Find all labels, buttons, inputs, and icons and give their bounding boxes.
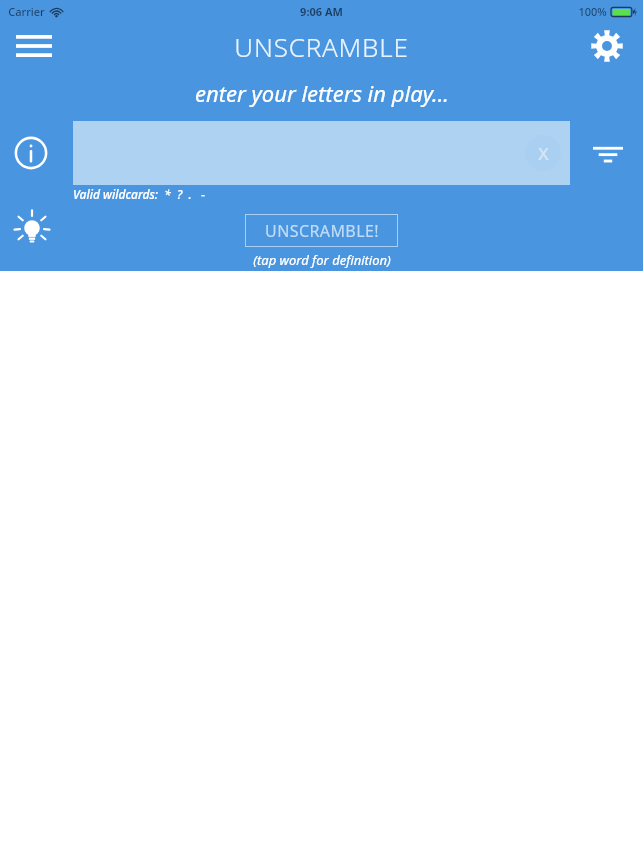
staticText: enter your letters in play... xyxy=(195,78,449,108)
button[interactable]: Menu xyxy=(10,22,58,70)
staticText: 9:06 AM xyxy=(300,4,343,19)
staticText: Carrier xyxy=(8,4,45,19)
button[interactable]: Filter xyxy=(586,131,630,175)
staticText: Valid wildcards: * ? . - xyxy=(73,186,205,202)
staticText: UNSCRAMBLE! xyxy=(265,220,379,242)
staticText: 100% xyxy=(578,4,607,19)
button[interactable]: UNSCRAMBLE! xyxy=(245,214,398,247)
button[interactable]: Information xyxy=(9,131,53,175)
button[interactable]: Hint xyxy=(9,207,55,253)
staticText: X xyxy=(538,142,549,165)
staticText: UNSCRAMBLE xyxy=(234,29,409,64)
button[interactable]: Settings xyxy=(583,22,631,70)
button[interactable]: Clear xyxy=(525,135,561,171)
staticText: (tap word for definition) xyxy=(253,251,391,269)
